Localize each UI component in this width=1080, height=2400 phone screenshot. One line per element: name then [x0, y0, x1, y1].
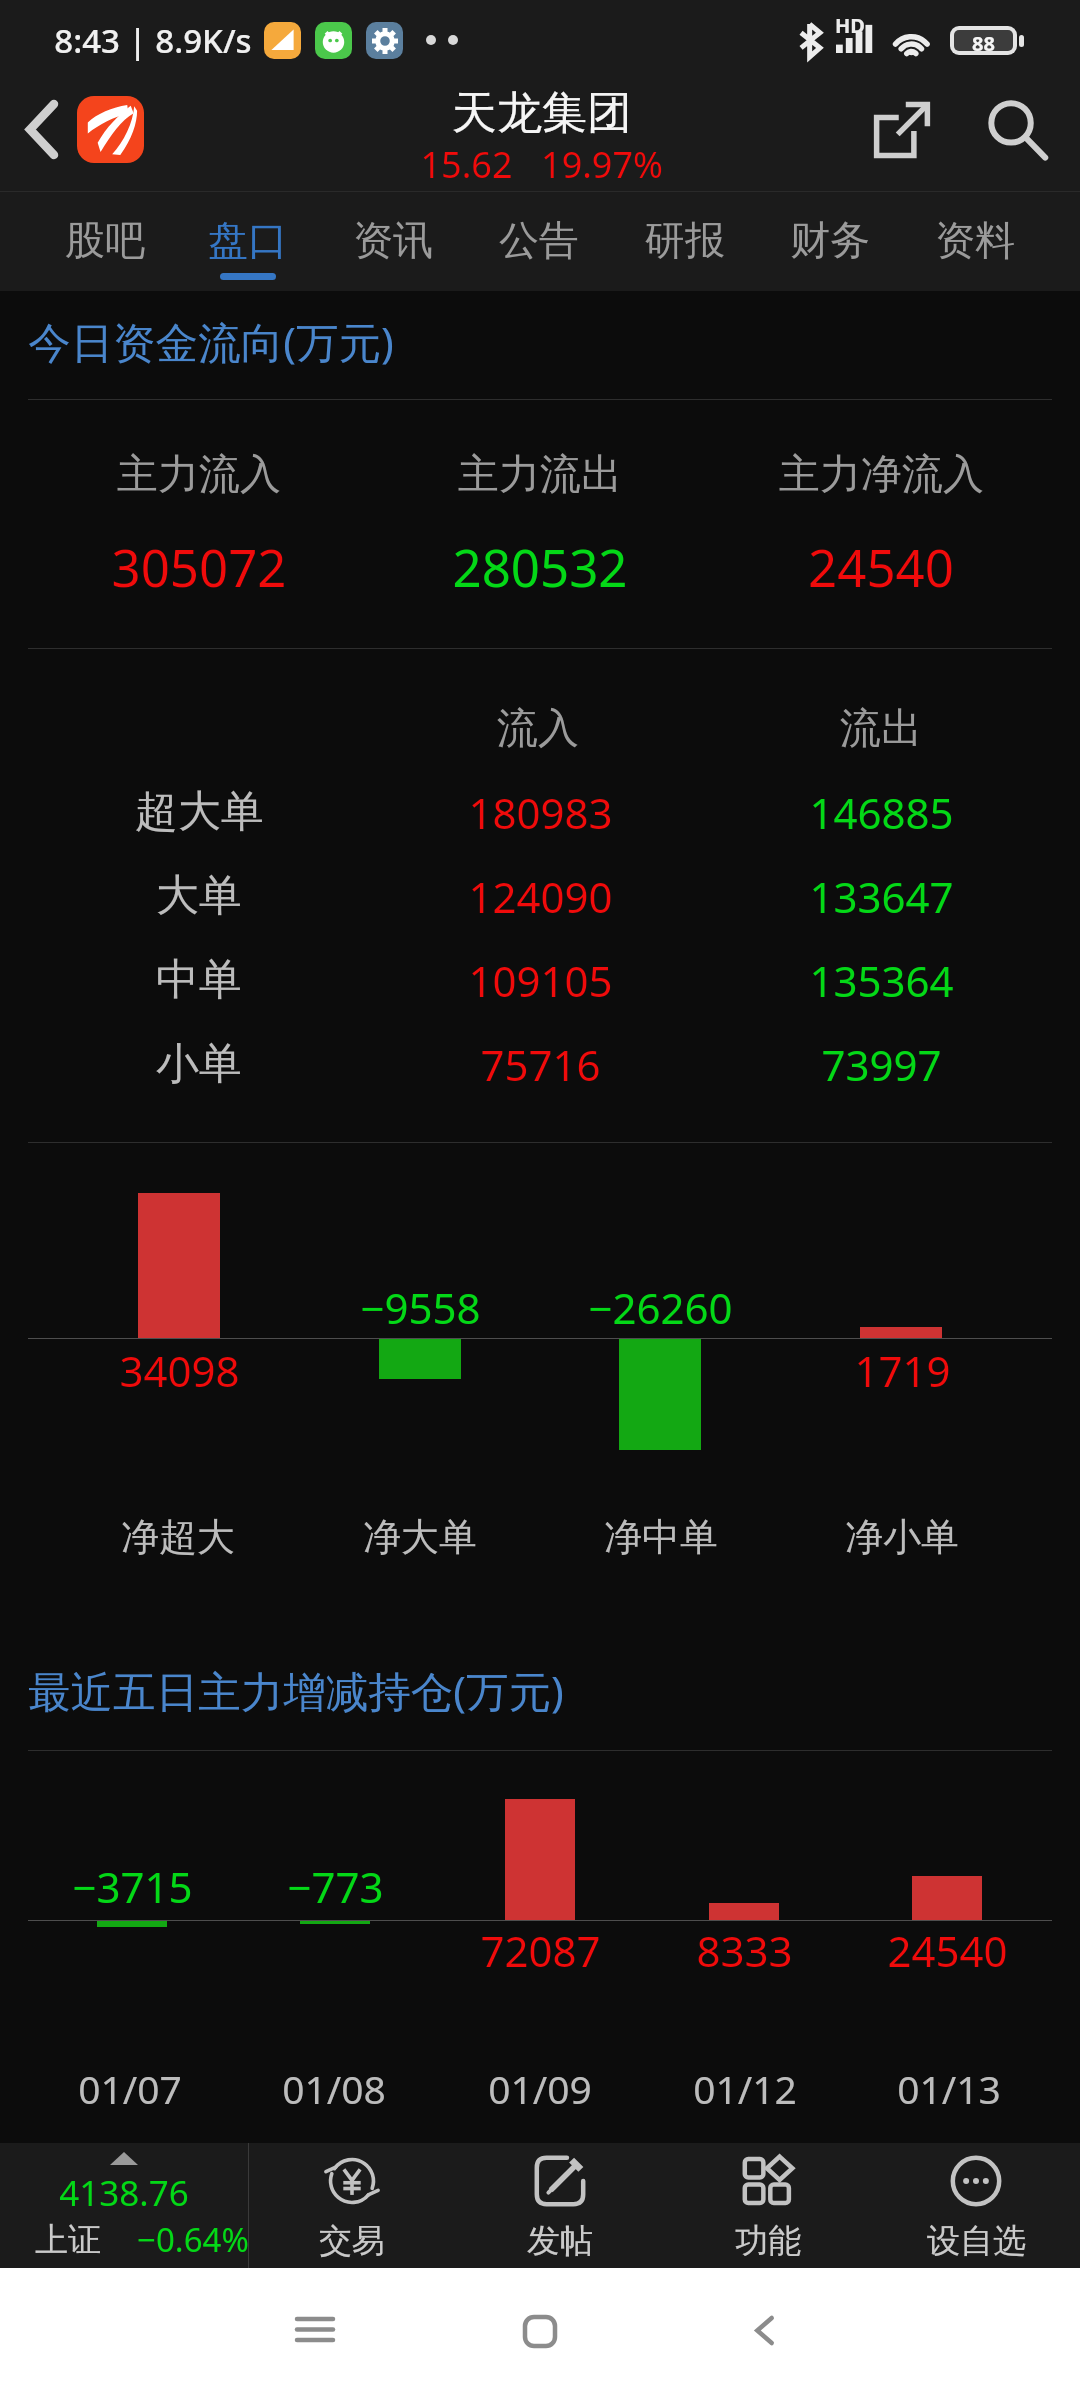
staticText: 01/12: [693, 2062, 797, 2115]
staticText: 净大单: [363, 1513, 477, 1561]
staticText: 124090: [468, 868, 613, 925]
staticText: 75716: [480, 1036, 601, 1093]
staticText: 小单: [156, 1037, 242, 1091]
staticText: 主力流出: [458, 449, 622, 501]
button[interactable]: 盘口: [177, 192, 319, 291]
staticText: 280532: [452, 532, 628, 601]
staticText: 19.97%: [541, 140, 663, 184]
staticText: 设自选: [927, 2220, 1026, 2262]
button[interactable]: 财务: [759, 192, 901, 291]
staticText: 净中单: [604, 1513, 718, 1561]
staticText: 资料: [935, 215, 1015, 265]
staticText: 01/08: [282, 2062, 386, 2115]
staticText: −9558: [360, 1279, 481, 1336]
staticText: 主力流入: [117, 449, 281, 501]
button[interactable]: Home: [480, 2268, 600, 2400]
staticText: −773: [287, 1858, 384, 1915]
staticText: 146885: [809, 784, 954, 841]
button[interactable]: 发帖: [456, 2143, 664, 2268]
staticText: 最近五日主力增减持仓(万元): [28, 1662, 564, 1720]
staticText: 研报: [645, 215, 725, 265]
staticText: 24540: [887, 1922, 1008, 1979]
button[interactable]: Back: [704, 2268, 824, 2400]
staticText: 01/07: [78, 2062, 182, 2115]
staticText: 资讯: [353, 215, 433, 265]
staticText: 流出: [840, 703, 922, 755]
staticText: 133647: [809, 868, 954, 925]
staticText: 上证: [35, 2219, 101, 2261]
staticText: 净小单: [845, 1513, 959, 1561]
staticText: 公告: [499, 215, 579, 265]
staticText: 01/13: [897, 2062, 1001, 2115]
staticText: 73997: [821, 1036, 942, 1093]
staticText: 股吧: [65, 215, 145, 265]
staticText: 中单: [156, 953, 242, 1007]
staticText: 超大单: [135, 785, 264, 839]
staticText: 天龙集团: [452, 85, 632, 141]
staticText: 流入: [497, 703, 579, 755]
staticText: HD: [835, 12, 865, 39]
button[interactable]: 研报: [614, 192, 756, 291]
staticText: 135364: [809, 952, 954, 1009]
staticText: 今日资金流向(万元): [28, 313, 394, 371]
button[interactable]: 上证指数 4138.76 -0.64%: [0, 2143, 248, 2268]
button[interactable]: 资料: [904, 192, 1046, 291]
staticText: 01/09: [488, 2062, 592, 2115]
staticText: −0.64%: [137, 2217, 249, 2262]
staticText: 15.62: [420, 140, 513, 184]
staticText: 8:43 | 8.9K/s: [54, 18, 252, 63]
button[interactable]: Back: [0, 80, 84, 191]
staticText: 盘口: [208, 215, 288, 265]
button[interactable]: Recent apps: [255, 2268, 375, 2400]
staticText: 180983: [468, 784, 613, 841]
staticText: 8333: [696, 1922, 793, 1979]
staticText: −3715: [72, 1858, 193, 1915]
staticText: 大单: [156, 869, 242, 923]
button[interactable]: 功能: [664, 2143, 872, 2268]
staticText: 4138.76: [59, 2169, 189, 2217]
staticText: 88: [972, 30, 995, 51]
staticText: 净超大: [121, 1513, 235, 1561]
staticText: 主力净流入: [779, 449, 984, 501]
staticText: 305072: [111, 532, 287, 601]
staticText: 财务: [790, 215, 870, 265]
button[interactable]: 公告: [468, 192, 610, 291]
button[interactable]: 交易: [248, 2143, 456, 2268]
button[interactable]: 资讯: [322, 192, 464, 291]
staticText: 24540: [808, 532, 954, 601]
button[interactable]: Search: [963, 80, 1073, 191]
button[interactable]: Share: [847, 80, 957, 191]
staticText: 功能: [735, 2220, 801, 2262]
button[interactable]: 股吧: [34, 192, 176, 291]
staticText: −26260: [588, 1279, 733, 1336]
staticText: 1719: [854, 1342, 951, 1399]
staticText: 发帖: [527, 2220, 593, 2262]
staticText: 34098: [119, 1342, 240, 1399]
staticText: 72087: [480, 1922, 601, 1979]
button[interactable]: 设自选: [872, 2143, 1080, 2268]
button[interactable]: East Money home: [77, 96, 144, 163]
staticText: 交易: [319, 2220, 385, 2262]
staticText: 109105: [468, 952, 613, 1009]
